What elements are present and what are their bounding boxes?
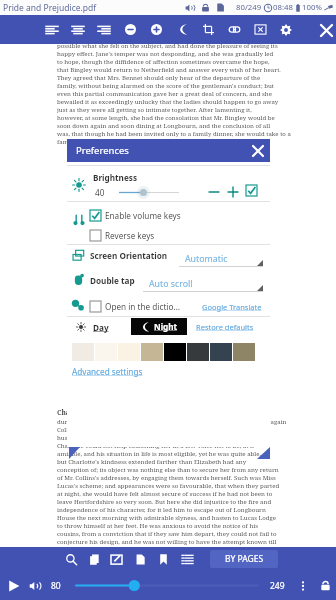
button[interactable]: Night bbox=[131, 318, 187, 335]
staticText: just as they were all getting so intimat… bbox=[57, 105, 252, 113]
staticText: BY PAGES bbox=[225, 553, 264, 565]
staticText: family, and had not been invited at once… bbox=[57, 137, 262, 145]
staticText: at night, she would have felt almost sec… bbox=[57, 489, 273, 497]
staticText: Auto scroll bbox=[149, 278, 193, 290]
staticText: to throw himself at her feet. He was anx… bbox=[57, 521, 258, 529]
button[interactable]: Zoom in bbox=[143, 16, 169, 43]
staticText: Pride and Prejudice.pdf bbox=[3, 2, 97, 14]
button[interactable]: Annotate bbox=[105, 547, 127, 571]
button[interactable]: Checkbox bbox=[88, 228, 102, 242]
button[interactable]: Contents bbox=[176, 547, 198, 571]
staticText: possible what she felt on the subject, a… bbox=[57, 41, 278, 49]
button[interactable]: Crop bbox=[195, 16, 221, 43]
staticText: Chapter 22 bbox=[57, 408, 94, 417]
staticText: Automatic bbox=[185, 253, 228, 265]
button[interactable]: Bookmark bbox=[152, 547, 174, 571]
button[interactable]: Lock rotation bbox=[316, 571, 334, 600]
staticText: Reverse keys bbox=[105, 230, 155, 241]
button[interactable]: Align left bbox=[39, 16, 65, 43]
button[interactable]: Link bbox=[221, 16, 247, 43]
button[interactable]: Fit page bbox=[247, 16, 273, 43]
staticText: conception of; its object was nothing el… bbox=[57, 465, 279, 473]
staticText: soon down again and soon dining at Longb… bbox=[57, 121, 271, 129]
staticText: 249 bbox=[270, 580, 285, 592]
staticText: family, without being alarmed on the sco… bbox=[57, 81, 274, 89]
staticText: Collins was at leisure to look around hi… bbox=[57, 425, 271, 433]
staticText: but Charlotte's kindness extended farthe… bbox=[57, 457, 247, 465]
button[interactable]: Checkbox bbox=[88, 299, 102, 313]
button[interactable]: BY PAGES bbox=[210, 550, 278, 568]
button[interactable]: Google Translate bbox=[202, 302, 262, 312]
button[interactable]: Volume bbox=[24, 571, 46, 600]
staticText: They agreed that Mrs. Bennet should only… bbox=[57, 73, 261, 81]
staticText: House the next morning with admirable sl… bbox=[57, 513, 277, 521]
button[interactable]: Align right bbox=[91, 16, 117, 43]
button[interactable]: Restore defaults bbox=[196, 322, 254, 332]
button[interactable]: Close bbox=[317, 21, 335, 39]
button[interactable]: Night mode bbox=[169, 16, 195, 43]
button[interactable]: Select Automatic bbox=[179, 253, 263, 267]
staticText: 100% bbox=[302, 2, 322, 13]
button[interactable]: Checkbox bbox=[88, 208, 102, 222]
button[interactable]: Advanced settings bbox=[72, 366, 143, 377]
staticText: that Bingley would return to Netherfield… bbox=[57, 65, 281, 73]
staticText: Screen Orientation bbox=[90, 250, 168, 261]
staticText: of Mr. Collins's addresses, by engaging … bbox=[57, 473, 276, 481]
staticText: Double tap bbox=[90, 275, 135, 286]
button[interactable]: Brightness slider bbox=[113, 186, 179, 199]
staticText: was, that though he had been invited onl… bbox=[57, 129, 291, 137]
button[interactable]: More options bbox=[294, 571, 312, 600]
staticText: independence of his character, for it le… bbox=[57, 505, 266, 513]
button[interactable]: Notes bbox=[129, 547, 151, 571]
button[interactable]: Settings bbox=[273, 16, 299, 43]
button[interactable]: Search bbox=[60, 547, 82, 571]
staticText: 08:48 bbox=[273, 2, 293, 13]
staticText: 80/249 bbox=[236, 2, 262, 13]
staticText: conjecture his design, and he was not wi… bbox=[57, 537, 277, 545]
staticText: Preferences bbox=[76, 144, 129, 157]
staticText: Open in the dictio… bbox=[105, 301, 180, 312]
button[interactable]: Play bbox=[3, 571, 25, 600]
button[interactable]: Page slider bbox=[70, 571, 264, 600]
staticText: husband, and continually was she repeati… bbox=[57, 433, 256, 441]
button[interactable]: Select Auto scroll bbox=[143, 278, 263, 292]
staticText: Enable volume keys bbox=[105, 210, 181, 221]
button[interactable]: Day bbox=[93, 322, 109, 333]
staticText: Night bbox=[154, 321, 178, 332]
staticText: amiable, and his situation in life is mo… bbox=[57, 449, 261, 457]
staticText: to hope, though the diffidence of affect… bbox=[57, 57, 270, 65]
staticText: even this partial communication gave her… bbox=[57, 89, 272, 97]
button[interactable]: Increase brightness bbox=[224, 183, 241, 200]
staticText: Brightness bbox=[93, 172, 138, 183]
staticText: however, at some length, she had the con… bbox=[57, 113, 275, 121]
staticText: Lucas's scheme; and appearances were so … bbox=[57, 481, 280, 489]
button[interactable]: Close dialog bbox=[249, 142, 267, 160]
staticText: Charlotte could not help cautioning her … bbox=[57, 441, 255, 449]
staticText: 40 bbox=[95, 187, 105, 198]
button[interactable]: Checkbox bbox=[244, 183, 258, 197]
staticText: bewailed it as exceedingly unlucky that … bbox=[57, 97, 279, 105]
staticText: cousins, from a conviction that if they … bbox=[57, 529, 277, 537]
staticText: happy effect. Jane's temper was not desp… bbox=[57, 49, 274, 57]
button[interactable]: Zoom out bbox=[117, 16, 143, 43]
button[interactable]: Decrease brightness bbox=[205, 183, 222, 200]
staticText: 80 bbox=[51, 580, 61, 592]
button[interactable]: Pages bbox=[83, 547, 105, 571]
button[interactable]: Align center bbox=[65, 16, 91, 43]
staticText: during the whole of the next day; and th… bbox=[57, 417, 287, 425]
staticText: leave Hertfordshire so very soon. But he… bbox=[57, 497, 272, 505]
